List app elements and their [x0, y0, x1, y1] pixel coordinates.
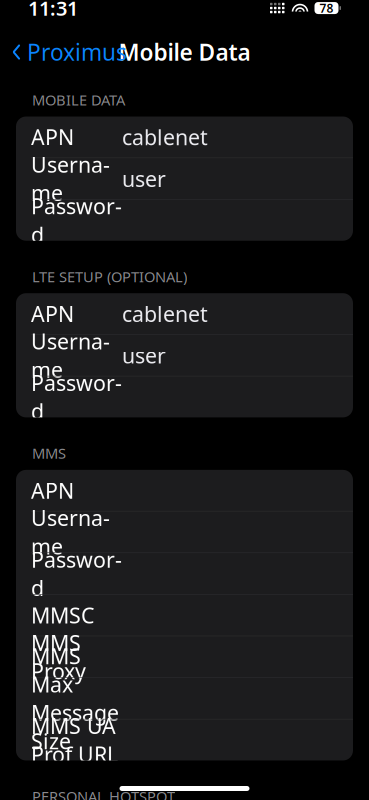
- button[interactable]: APN: [16, 293, 353, 335]
- button[interactable]: MMS UA Prof URL: [16, 719, 353, 760]
- staticText: user: [122, 164, 166, 193]
- staticText: APN: [31, 476, 74, 504]
- staticText: LTE SETUP (OPTIONAL): [32, 267, 187, 286]
- staticText: Username: [31, 327, 110, 384]
- staticText: MMSC: [31, 601, 94, 629]
- staticText: MMS: [32, 443, 66, 463]
- button[interactable]: Username: [16, 335, 353, 376]
- staticText: MMS Proxy: [31, 628, 86, 685]
- staticText: user: [122, 341, 166, 369]
- staticText: Username: [31, 150, 110, 207]
- button[interactable]: Username: [16, 158, 353, 200]
- staticText: Password: [31, 369, 122, 425]
- button[interactable]: APN: [16, 116, 353, 158]
- staticText: APN: [31, 123, 74, 151]
- staticText: Password: [31, 192, 122, 249]
- button[interactable]: Password: [16, 200, 353, 241]
- button[interactable]: APN: [16, 470, 353, 511]
- button[interactable]: Password: [16, 553, 353, 595]
- staticText: APN: [31, 299, 74, 328]
- button[interactable]: MMS Proxy: [16, 636, 353, 678]
- button[interactable]: Password: [16, 376, 353, 417]
- staticText: Password: [31, 545, 122, 602]
- staticText: Mobile Data: [118, 37, 250, 67]
- staticText: 11:31: [28, 0, 78, 21]
- staticText: Proximus: [27, 37, 127, 67]
- button[interactable]: Proximus: [0, 31, 127, 73]
- staticText: PERSONAL HOTSPOT: [32, 786, 175, 800]
- button[interactable]: MMS Max Message Size: [16, 678, 353, 719]
- staticText: 78: [319, 0, 333, 16]
- staticText: cablenet: [122, 299, 208, 328]
- staticText: MOBILE DATA: [32, 90, 125, 109]
- staticText: MMS UA Prof URL: [31, 712, 118, 768]
- button[interactable]: MMSC: [16, 595, 353, 636]
- staticText: cablenet: [122, 123, 208, 151]
- staticText: MMS Max Message Size: [31, 642, 119, 755]
- staticText: Username: [31, 504, 110, 560]
- button[interactable]: Username: [16, 511, 353, 553]
